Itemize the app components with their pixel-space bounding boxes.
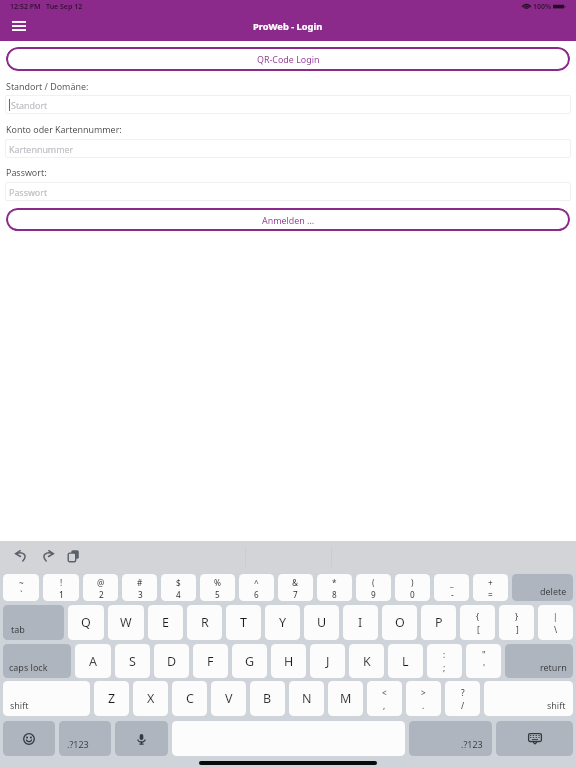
- staticText: 1: [59, 589, 64, 600]
- staticText: U: [317, 614, 327, 631]
- staticText: }: [515, 611, 519, 622]
- button[interactable]: R: [187, 605, 222, 640]
- button[interactable]: H: [271, 644, 306, 678]
- button[interactable]: X: [133, 681, 168, 716]
- button[interactable]: delete: [512, 574, 573, 601]
- button[interactable]: A: [75, 644, 111, 678]
- button[interactable]: QR-Code Login: [6, 47, 570, 71]
- button[interactable]: |: [538, 605, 573, 640]
- button[interactable]: shift: [3, 681, 90, 716]
- button[interactable]: :: [427, 644, 462, 678]
- staticText: L: [402, 653, 409, 670]
- button[interactable]: V: [211, 681, 246, 716]
- button[interactable]: <: [367, 681, 402, 716]
- button[interactable]: shift: [484, 681, 573, 716]
- staticText: 12:52 PM: [10, 2, 41, 12]
- button[interactable]: ": [466, 644, 501, 678]
- button[interactable]: J: [310, 644, 345, 678]
- button[interactable]: I: [343, 605, 378, 640]
- button[interactable]: D: [154, 644, 189, 678]
- button[interactable]: Standort: [5, 95, 571, 114]
- staticText: /: [461, 700, 465, 711]
- button[interactable]: !: [43, 574, 79, 601]
- button[interactable]: S: [115, 644, 150, 678]
- button[interactable]: +: [473, 574, 508, 601]
- button[interactable]: P: [421, 605, 456, 640]
- button[interactable]: ?: [445, 681, 480, 716]
- button[interactable]: ): [395, 574, 430, 601]
- button[interactable]: *: [317, 574, 352, 601]
- button[interactable]: K: [349, 644, 384, 678]
- staticText: (: [372, 577, 375, 588]
- staticText: Standort / Domäne:: [6, 80, 89, 92]
- button[interactable]: Passwort: [5, 182, 571, 201]
- button[interactable]: Z: [94, 681, 129, 716]
- staticText: return: [540, 661, 567, 673]
- button[interactable]: Q: [68, 605, 104, 640]
- button[interactable]: Hide keyboard: [496, 721, 573, 756]
- button[interactable]: Emoji: [3, 721, 55, 756]
- staticText: 3: [138, 589, 143, 600]
- staticText: ": [482, 649, 486, 660]
- staticText: I: [358, 614, 363, 631]
- staticText: ]: [516, 624, 519, 635]
- staticText: &: [292, 577, 299, 588]
- staticText: Konto oder Kartennummer:: [6, 123, 122, 135]
- button[interactable]: E: [148, 605, 183, 640]
- button[interactable]: F: [193, 644, 228, 678]
- staticText: -: [451, 589, 454, 600]
- button[interactable]: L: [388, 644, 423, 678]
- button[interactable]: Undo: [9, 544, 33, 568]
- staticText: !: [60, 577, 63, 588]
- button[interactable]: U: [304, 605, 339, 640]
- button[interactable]: >: [406, 681, 441, 716]
- button[interactable]: Anmelden ...: [6, 208, 570, 231]
- staticText: ?: [461, 687, 465, 698]
- button[interactable]: return: [505, 644, 573, 678]
- button[interactable]: .?123: [409, 721, 492, 756]
- staticText: \: [554, 624, 558, 635]
- button[interactable]: &: [278, 574, 313, 601]
- staticText: J: [326, 653, 330, 670]
- button[interactable]: ^: [239, 574, 274, 601]
- button[interactable]: M: [328, 681, 363, 716]
- button[interactable]: O: [382, 605, 417, 640]
- button[interactable]: {: [460, 605, 495, 640]
- staticText: :: [443, 649, 446, 660]
- button[interactable]: Paste: [61, 544, 85, 568]
- button[interactable]: Y: [265, 605, 300, 640]
- staticText: Z: [108, 690, 116, 707]
- staticText: ~: [19, 577, 24, 588]
- button[interactable]: ~: [3, 574, 39, 601]
- button[interactable]: C: [172, 681, 207, 716]
- staticText: H: [284, 653, 294, 670]
- button[interactable]: _: [434, 574, 469, 601]
- button[interactable]: tab: [3, 605, 64, 640]
- button[interactable]: Dictation: [115, 721, 168, 756]
- button[interactable]: %: [200, 574, 235, 601]
- staticText: W: [120, 614, 132, 631]
- staticText: 9: [371, 589, 376, 600]
- staticText: 6: [254, 589, 259, 600]
- button[interactable]: W: [108, 605, 144, 640]
- button[interactable]: (: [356, 574, 391, 601]
- button[interactable]: #: [122, 574, 157, 601]
- staticText: B: [263, 690, 272, 707]
- button[interactable]: caps lock: [3, 644, 71, 678]
- button[interactable]: Open navigation menu: [5, 15, 32, 37]
- staticText: ': [483, 662, 485, 673]
- button[interactable]: .?123: [59, 721, 111, 756]
- button[interactable]: }: [499, 605, 534, 640]
- staticText: Y: [279, 614, 287, 631]
- button[interactable]: $: [161, 574, 196, 601]
- button[interactable]: B: [250, 681, 285, 716]
- button[interactable]: Redo: [35, 544, 59, 568]
- button[interactable]: N: [289, 681, 324, 716]
- staticText: 7: [293, 589, 298, 600]
- button[interactable]: G: [232, 644, 267, 678]
- button[interactable]: T: [226, 605, 261, 640]
- button[interactable]: @: [83, 574, 118, 601]
- button[interactable]: Kartennummer: [5, 139, 571, 158]
- staticText: `: [20, 589, 23, 600]
